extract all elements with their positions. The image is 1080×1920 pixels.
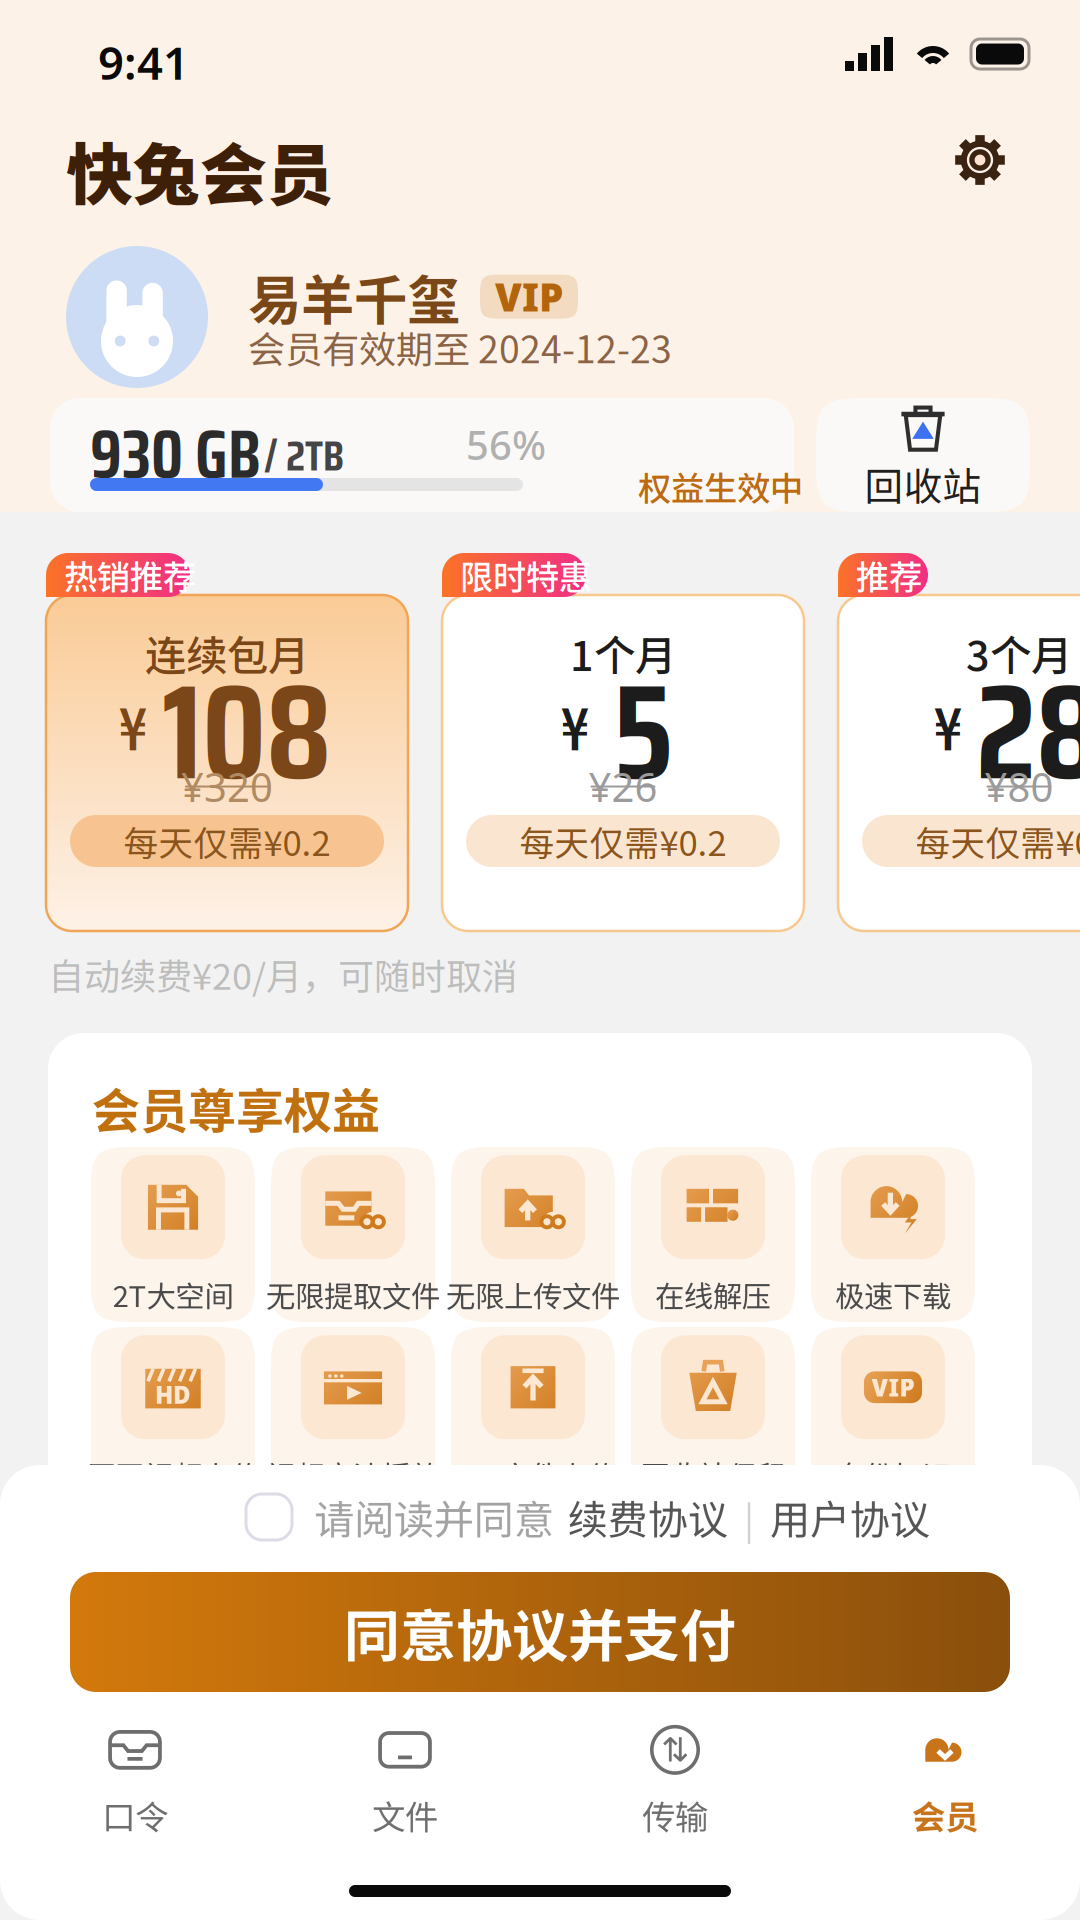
staticText: ¥320 [181, 760, 273, 813]
staticText: VIP [871, 1371, 914, 1403]
button[interactable]: 3个月 [838, 553, 1080, 931]
staticText: | [744, 1490, 754, 1544]
staticText: 9:41 [98, 32, 189, 92]
staticText: 快兔会员 [66, 122, 334, 218]
staticText: 108 [162, 627, 332, 837]
staticText: ¥80 [984, 760, 1053, 813]
staticText: 原画视频上传 [86, 1453, 260, 1496]
staticText: HD [155, 1379, 191, 1410]
staticText: 无限上传文件 [446, 1273, 620, 1316]
staticText: 用户协议 [770, 1488, 930, 1546]
staticText: ¥ [560, 681, 590, 777]
staticText: 请阅读并同意 [314, 1488, 554, 1546]
staticText: 身份标识 [835, 1453, 951, 1496]
button[interactable]: 回收站 [816, 398, 1030, 512]
button[interactable]: ⇅ [540, 1720, 810, 1840]
staticText: 1个月 [570, 623, 676, 683]
button[interactable]: VIP [811, 1327, 975, 1502]
button[interactable]: 文件 [270, 1720, 540, 1840]
button[interactable]: 设置 [938, 118, 1022, 202]
staticText: 每天仅需¥0.2 [519, 816, 726, 866]
staticText: VIP [495, 271, 563, 322]
staticText: 自动续费¥20/月，可随时取消 [48, 948, 518, 1000]
button[interactable]: 极速下载 [811, 1147, 975, 1322]
staticText: 会员 [912, 1791, 978, 1839]
staticText: / 2TB [264, 422, 344, 489]
staticText: ⇅ [661, 1731, 689, 1769]
staticText: 3个月 [966, 623, 1072, 683]
staticText: 文件 [372, 1791, 438, 1839]
staticText: 2T大空间 [112, 1273, 233, 1316]
staticText: 5 [613, 627, 673, 837]
button[interactable]: 在线解压 [631, 1147, 795, 1322]
button[interactable]: 用户协议 [770, 1488, 930, 1546]
staticText: 口令 [102, 1791, 168, 1839]
staticText: 10G文件上传 [449, 1453, 617, 1496]
staticText: 连续包月 [145, 623, 309, 683]
staticText: 28 [976, 627, 1080, 837]
staticText: 推荐 [856, 551, 922, 599]
staticText: 极速下载 [835, 1273, 951, 1316]
staticText: 56% [466, 418, 546, 471]
staticText: 无限提取文件 [266, 1273, 440, 1316]
staticText: 在线解压 [655, 1273, 771, 1316]
staticText: 限时特惠 [460, 551, 592, 599]
staticText: 易羊千玺 [248, 258, 460, 335]
staticText: 热销推荐 [64, 551, 196, 599]
button[interactable]: 2T大空间 [91, 1147, 255, 1322]
staticText: 每天仅需¥0.2 [915, 816, 1080, 866]
staticText: 会员尊享权益 [92, 1073, 380, 1142]
staticText: ¥ [933, 681, 963, 777]
staticText: 同意协议并支付 [344, 1591, 736, 1673]
button[interactable]: 续费协议 [568, 1488, 728, 1546]
staticText: 续费协议 [568, 1488, 728, 1546]
staticText: 权益生效中 [638, 462, 803, 510]
button[interactable]: 无限上传文件 [451, 1147, 615, 1322]
staticText: ¥26 [588, 760, 657, 813]
staticText: 会员有效期至 2024-12-23 [248, 320, 672, 374]
button[interactable]: 会员 [810, 1720, 1080, 1840]
staticText: 每天仅需¥0.2 [123, 816, 330, 866]
button[interactable]: HD [91, 1327, 255, 1502]
button[interactable]: 视频高清播放 [271, 1327, 435, 1502]
staticText: 传输 [642, 1791, 708, 1839]
button[interactable]: 1个月 [442, 553, 804, 931]
staticText: ¥ [118, 681, 148, 777]
staticText: 930 GB [90, 402, 261, 507]
button[interactable]: 10G文件上传 [451, 1327, 615, 1502]
button[interactable]: 回收站保留 [631, 1327, 795, 1502]
button[interactable]: 口令 [0, 1720, 270, 1840]
button[interactable]: 无限提取文件 [271, 1147, 435, 1322]
button[interactable]: 同意协议 [246, 1494, 292, 1540]
button[interactable]: 连续包月 [46, 553, 408, 931]
staticText: 回收站保留 [640, 1453, 785, 1496]
button[interactable]: 同意协议并支付 [70, 1572, 1010, 1692]
staticText: 视频高清播放 [266, 1453, 440, 1496]
staticText: 回收站 [864, 456, 981, 512]
